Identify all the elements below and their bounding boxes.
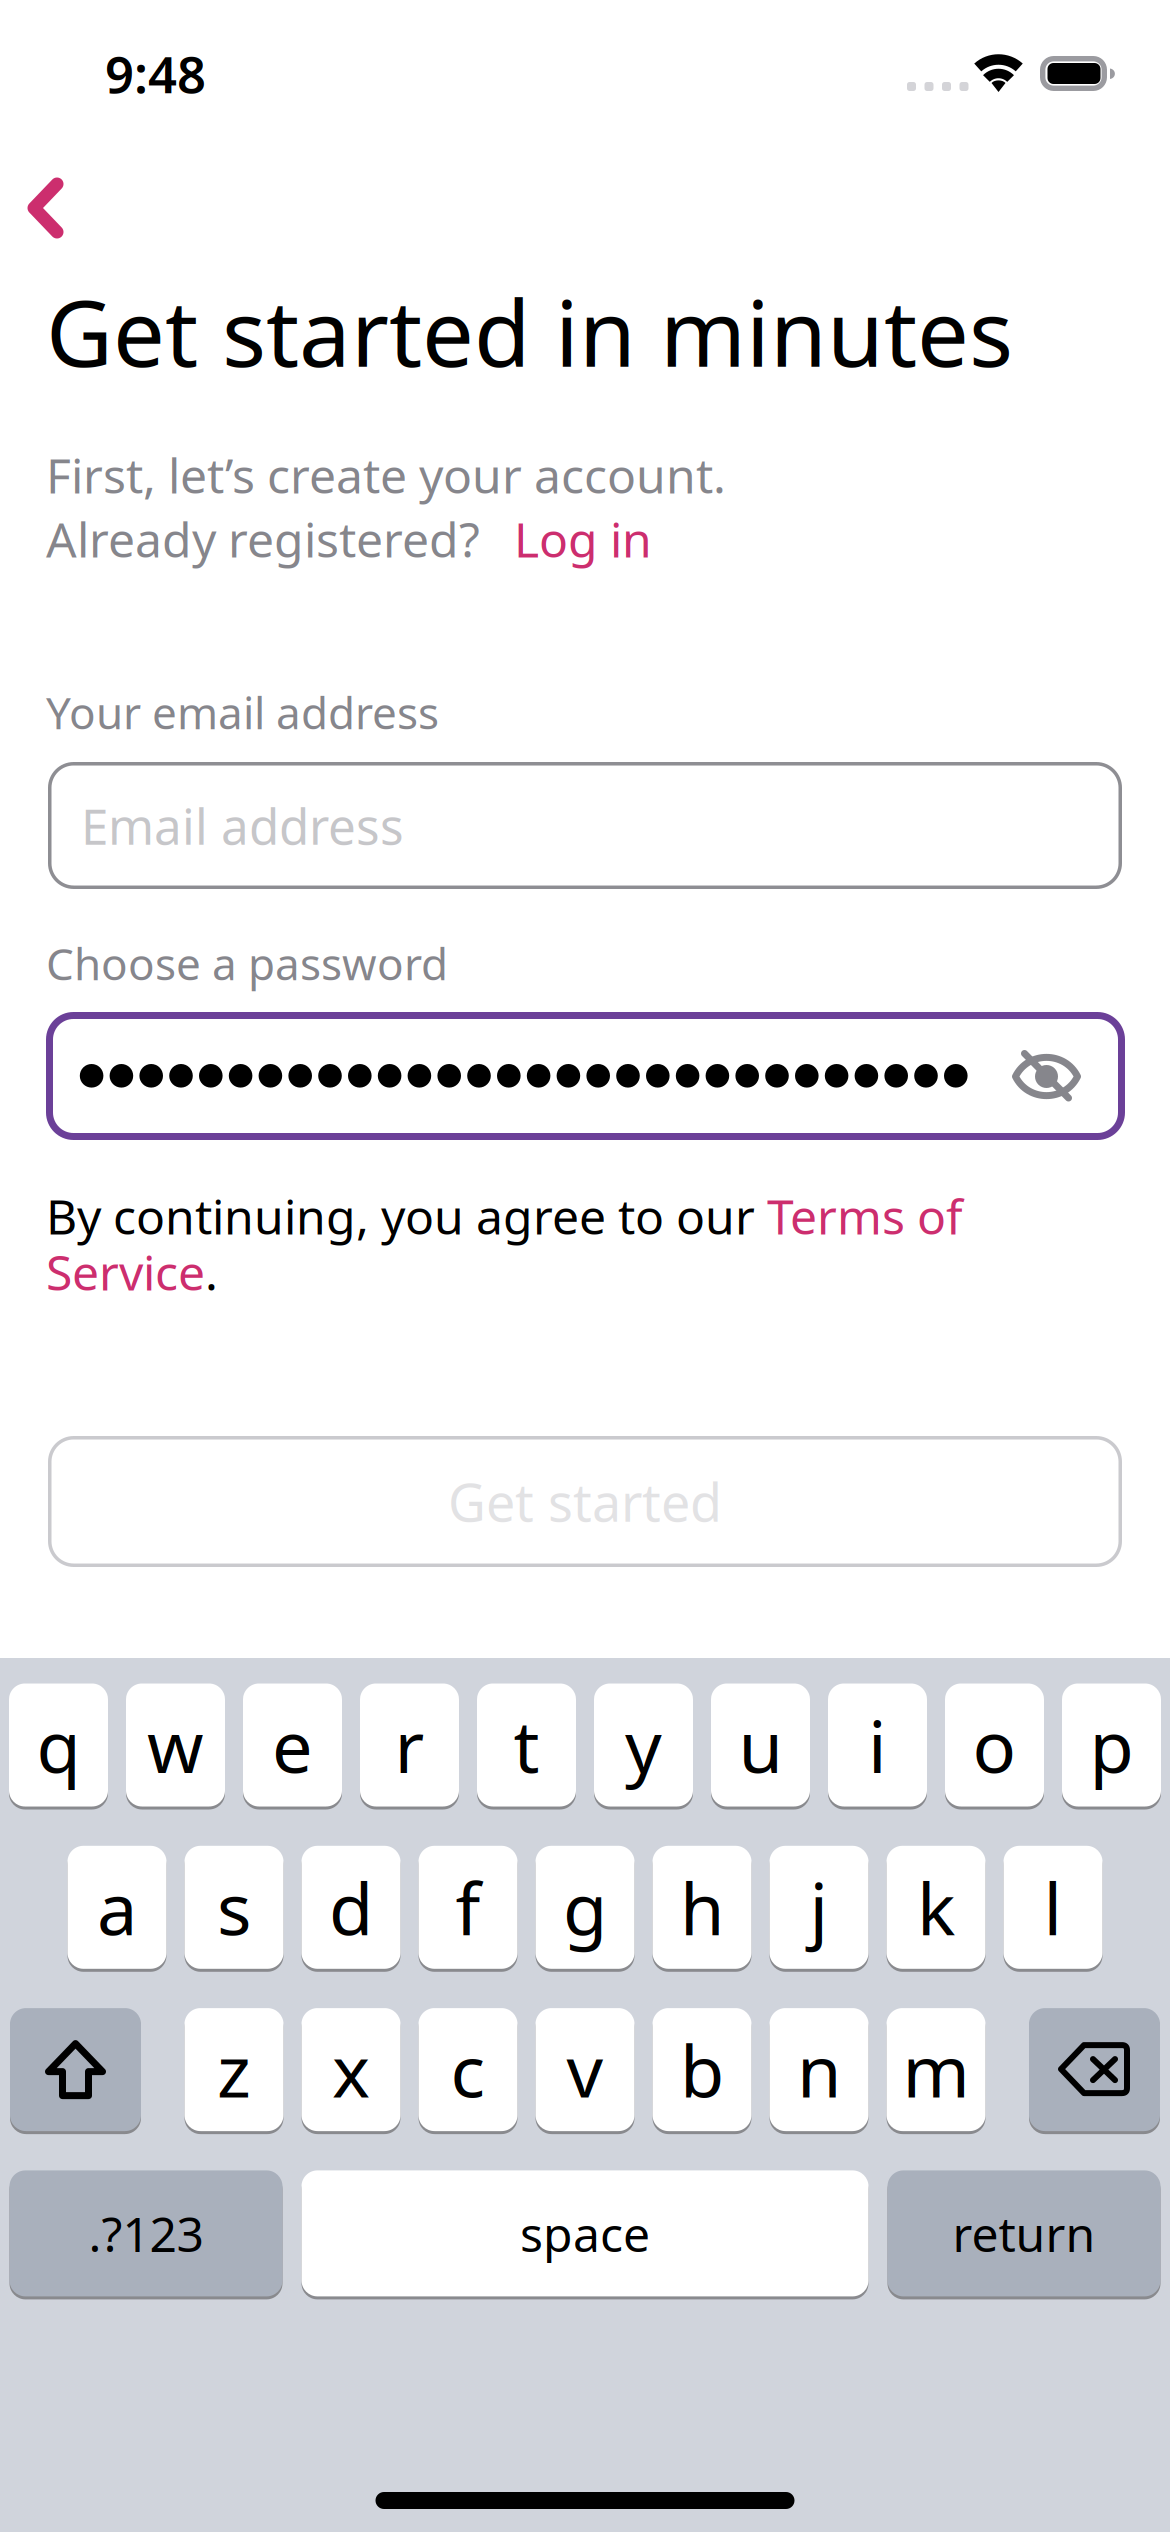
staticText: h [680,1859,724,1955]
staticText: g [563,1859,607,1955]
staticText: y [625,1697,662,1793]
button[interactable]: i [828,1682,927,1808]
staticText: space [520,2201,650,2265]
staticText: r [394,1697,424,1793]
button[interactable]: g [535,1844,634,1970]
button[interactable]: Delete [1029,2007,1160,2133]
button[interactable]: Shift [10,2007,141,2133]
button[interactable]: u [711,1682,810,1808]
staticText: s [217,1859,251,1955]
button[interactable]: b [652,2007,751,2133]
button[interactable]: space [301,2169,868,2298]
button[interactable]: c [418,2007,517,2133]
staticText: x [332,2022,370,2117]
button[interactable]: e [243,1682,342,1808]
staticText: Get started in minutes [46,270,1013,392]
staticText: Log in [514,507,652,571]
button[interactable]: n [769,2007,868,2133]
staticText: w [147,1697,204,1793]
button[interactable]: t [477,1682,576,1808]
staticText: z [217,2022,251,2117]
button[interactable]: s [184,1844,283,1970]
staticText: f [455,1859,480,1955]
staticText: j [809,1859,828,1955]
button[interactable]: Email address [48,762,1122,889]
staticText: . [205,1240,218,1304]
button[interactable]: m [886,2007,985,2133]
staticText: b [680,2022,724,2117]
button[interactable]: Log in [480,507,652,571]
button[interactable]: w [126,1682,225,1808]
staticText: Get started [448,1467,722,1536]
button[interactable]: l [1003,1844,1102,1970]
staticText: n [797,2022,841,2117]
button[interactable]: q [9,1682,108,1808]
staticText: p [1089,1697,1133,1793]
button[interactable]: z [184,2007,283,2133]
staticText: Service [46,1240,205,1304]
button[interactable]: Back [9,158,127,258]
staticText: i [868,1697,887,1793]
staticText: a [97,1859,137,1955]
button[interactable]: Get started [48,1436,1122,1567]
staticText: Choose a password [46,934,448,992]
button[interactable]: .?123 [9,2169,282,2298]
staticText: l [1043,1859,1062,1955]
button[interactable]: h [652,1844,751,1970]
staticText: t [513,1697,539,1793]
button[interactable]: y [594,1682,693,1808]
staticText: return [952,2201,1095,2265]
button[interactable]: r [360,1682,459,1808]
button[interactable]: v [535,2007,634,2133]
staticText: v [566,2022,603,2117]
staticText: Terms of [767,1184,963,1248]
staticText: q [36,1697,80,1793]
staticText: u [738,1697,782,1793]
button[interactable]: f [418,1844,517,1970]
button[interactable]: Service [46,1240,205,1304]
staticText: 9:48 [105,40,206,107]
staticText: c [450,2022,485,2117]
staticText: By continuing, you agree to our [46,1184,767,1248]
button[interactable]: k [886,1844,985,1970]
staticText: Your email address [46,683,439,741]
button[interactable]: d [301,1844,400,1970]
button[interactable]: a [67,1844,166,1970]
button[interactable]: j [769,1844,868,1970]
staticText: First, let’s create your account. [46,443,726,507]
staticText: d [329,1859,373,1955]
button[interactable]: x [301,2007,400,2133]
staticText: e [272,1697,313,1793]
button[interactable] [46,1012,1125,1140]
staticText: Email address [81,793,404,858]
button[interactable]: return [887,2169,1160,2298]
button[interactable]: o [945,1682,1044,1808]
staticText: o [972,1697,1016,1793]
staticText: Already registered? [46,507,480,571]
staticText: k [917,1859,955,1955]
button[interactable]: Terms of [767,1184,963,1248]
staticText: .?123 [88,2201,203,2265]
button[interactable]: p [1062,1682,1161,1808]
staticText: m [902,2022,969,2117]
